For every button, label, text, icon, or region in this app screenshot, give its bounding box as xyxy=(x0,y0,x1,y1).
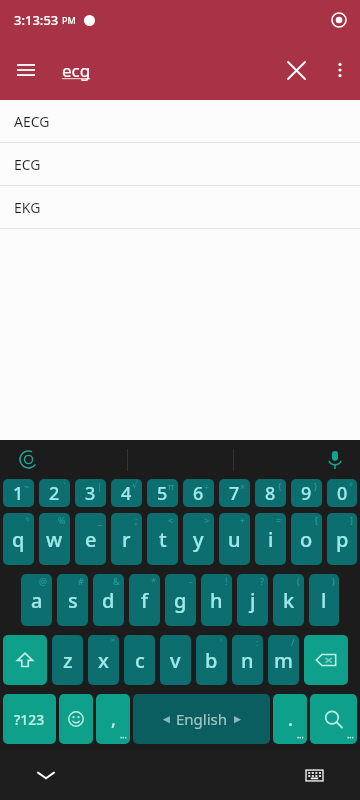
staticText: _ xyxy=(98,514,102,526)
staticText: ~ xyxy=(24,480,30,492)
button[interactable]: , xyxy=(96,694,130,744)
staticText: π xyxy=(168,480,174,492)
staticText: w xyxy=(46,526,63,553)
staticText: ?123 xyxy=(14,710,45,729)
staticText: ! xyxy=(225,575,228,587)
button[interactable]: r xyxy=(111,513,142,565)
staticText: / xyxy=(291,636,295,648)
button[interactable]: Translate xyxy=(9,440,48,479)
button[interactable]: 2 xyxy=(39,479,70,507)
button[interactable]: i xyxy=(255,513,286,565)
button[interactable]: z xyxy=(52,635,83,685)
button[interactable]: o xyxy=(291,513,322,565)
button[interactable]: v xyxy=(160,635,191,685)
staticText: f xyxy=(141,587,149,614)
staticText: 4 xyxy=(121,481,132,506)
staticText: " xyxy=(111,636,115,648)
button[interactable]: k xyxy=(273,574,304,626)
button[interactable]: 4 xyxy=(111,479,142,507)
button[interactable]: g xyxy=(165,574,196,626)
staticText: > xyxy=(204,514,210,526)
button[interactable]: Shift xyxy=(3,635,47,685)
staticText: , xyxy=(111,707,116,732)
button[interactable]: s xyxy=(57,574,88,626)
staticText: ] xyxy=(350,514,353,526)
button[interactable]: Hide keyboard xyxy=(24,753,68,797)
button[interactable]: ?123 xyxy=(3,694,56,744)
button[interactable]: p xyxy=(327,513,357,565)
staticText: p xyxy=(336,526,349,553)
staticText: i xyxy=(268,526,274,553)
button[interactable]: AECG xyxy=(0,100,360,142)
button[interactable]: Clear xyxy=(272,46,320,94)
button[interactable]: Voice input xyxy=(315,440,354,479)
button[interactable]: Search xyxy=(310,694,357,744)
staticText: ` xyxy=(63,480,66,492)
button[interactable]: 5 xyxy=(147,479,178,507)
staticText: } xyxy=(314,480,318,492)
staticText: u xyxy=(228,526,241,553)
button[interactable]: y xyxy=(183,513,214,565)
button[interactable]: w xyxy=(39,513,70,565)
staticText: a xyxy=(31,587,43,614)
button[interactable]: q xyxy=(3,513,34,565)
button[interactable]: Switch keyboard xyxy=(292,753,336,797)
staticText: ecg xyxy=(62,59,91,82)
button[interactable]: m xyxy=(268,635,299,685)
button[interactable]: 6 xyxy=(183,479,214,507)
button[interactable]: . xyxy=(273,694,307,744)
button[interactable]: 9 xyxy=(291,479,322,507)
staticText: EKG xyxy=(14,198,41,217)
button[interactable]: a xyxy=(21,574,52,626)
staticText: b xyxy=(205,647,218,674)
button[interactable]: ECG xyxy=(0,143,360,185)
button[interactable]: l xyxy=(309,574,339,626)
staticText: 5 xyxy=(157,481,168,506)
button[interactable]: f xyxy=(129,574,160,626)
staticText: n xyxy=(241,647,254,674)
button[interactable]: d xyxy=(93,574,124,626)
staticText: * xyxy=(151,575,156,587)
staticText: ••• xyxy=(297,734,304,742)
button[interactable]: Backspace xyxy=(304,635,348,685)
staticText: & xyxy=(113,575,120,587)
button[interactable]: t xyxy=(147,513,178,565)
button[interactable]: b xyxy=(196,635,227,685)
button[interactable]: n xyxy=(232,635,263,685)
staticText: ' xyxy=(220,636,223,648)
button[interactable]: EKG xyxy=(0,186,360,228)
staticText: 0 xyxy=(337,481,348,506)
button[interactable]: x xyxy=(88,635,119,685)
button[interactable]: j xyxy=(237,574,268,626)
staticText: m xyxy=(274,647,293,674)
staticText: ° xyxy=(349,480,353,492)
staticText: { xyxy=(278,480,282,492)
staticText: h xyxy=(210,587,223,614)
staticText: √ xyxy=(132,480,138,490)
button[interactable]: Emoji xyxy=(59,694,93,744)
staticText: ) xyxy=(332,575,335,587)
button[interactable]: 3 xyxy=(75,479,106,507)
staticText: 7 xyxy=(229,481,240,506)
staticText: ECG xyxy=(14,155,41,174)
button[interactable]: 1 xyxy=(3,479,34,507)
staticText: e xyxy=(85,526,97,553)
button[interactable]: 0 xyxy=(327,479,357,507)
button[interactable]: 8 xyxy=(255,479,286,507)
staticText: t xyxy=(159,526,167,553)
staticText: y xyxy=(193,526,204,553)
staticText: ••• xyxy=(347,734,354,742)
staticText: PM xyxy=(62,14,76,26)
staticText: x xyxy=(98,647,109,674)
staticText: = xyxy=(276,514,282,526)
button[interactable]: ◀ xyxy=(133,694,270,744)
button[interactable]: h xyxy=(201,574,232,626)
button[interactable]: More options xyxy=(320,50,360,90)
button[interactable]: 7 xyxy=(219,479,250,507)
staticText: r xyxy=(122,526,131,553)
button[interactable]: c xyxy=(124,635,155,685)
staticText: j xyxy=(250,587,256,614)
button[interactable]: e xyxy=(75,513,106,565)
button[interactable]: Menu xyxy=(0,44,52,96)
button[interactable]: u xyxy=(219,513,250,565)
